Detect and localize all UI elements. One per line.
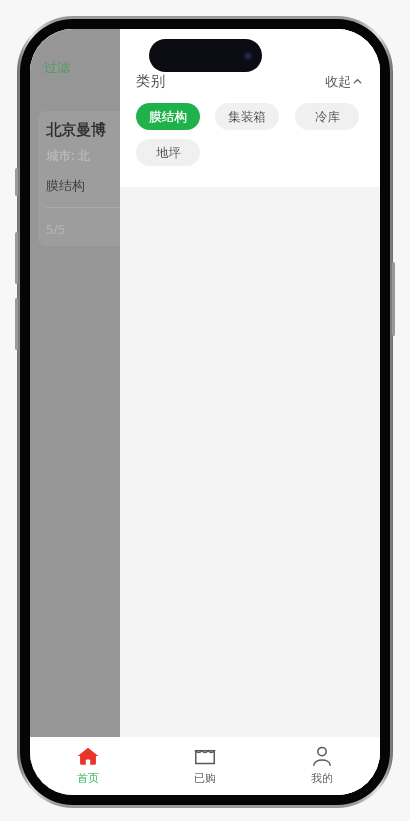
button[interactable]: 收起 — [323, 69, 364, 93]
staticText: 膜结构 — [149, 109, 187, 125]
staticText: 膜结构 — [46, 177, 85, 193]
button[interactable]: 已购 — [146, 737, 263, 795]
staticText: 首页 — [77, 771, 99, 785]
button[interactable]: 我的 — [263, 737, 380, 795]
button[interactable]: 地坪 — [136, 139, 200, 166]
button[interactable]: 冷库 — [295, 103, 359, 130]
button[interactable]: 膜结构 — [136, 103, 200, 130]
button[interactable]: 北京曼博 — [38, 111, 120, 246]
staticText: 过滤 — [44, 59, 70, 75]
button[interactable]: 过滤 — [42, 57, 72, 77]
staticText: 类别 — [136, 72, 165, 90]
staticText: 集装箱 — [228, 109, 266, 125]
button[interactable]: 集装箱 — [215, 103, 279, 130]
staticText: 地坪 — [156, 145, 181, 161]
staticText: 城市: 北 — [46, 147, 91, 164]
button[interactable]: 首页 — [30, 737, 146, 795]
staticText: 5/5 — [46, 221, 65, 238]
staticText: 我的 — [311, 771, 333, 785]
staticText: 北京曼博 — [46, 121, 106, 140]
staticText: 收起 — [325, 73, 351, 89]
staticText: 冷库 — [315, 109, 340, 125]
staticText: 已购 — [194, 771, 216, 785]
